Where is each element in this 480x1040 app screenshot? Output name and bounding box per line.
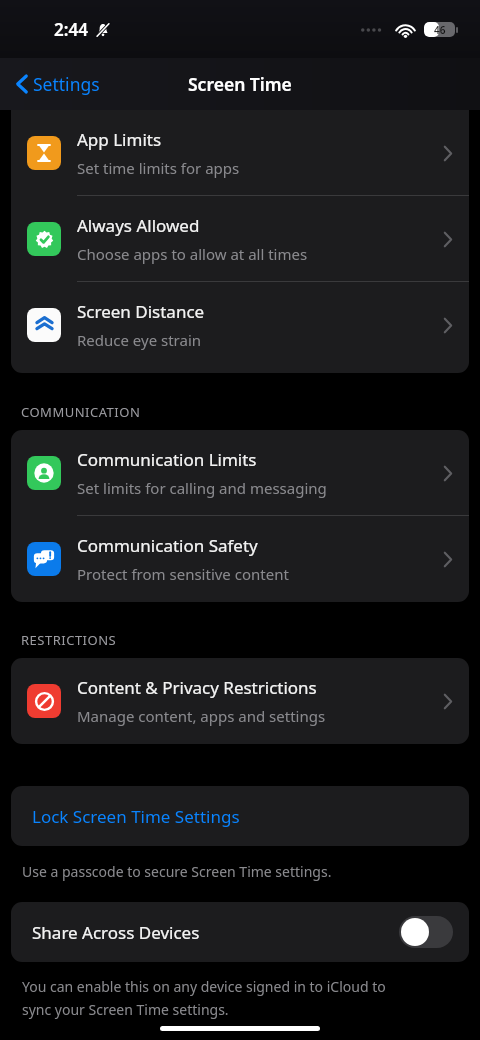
button[interactable]: Lock Screen Time Settings [11, 786, 469, 846]
button[interactable]: Screen Distance [11, 282, 469, 368]
staticText: Screen Time [188, 72, 292, 96]
staticText: Reduce eye strain [77, 330, 202, 350]
staticText: Set time limits for apps [77, 158, 240, 178]
staticText: COMMUNICATION [21, 403, 141, 421]
staticText: App Limits [77, 128, 162, 151]
staticText: Communication Safety [77, 534, 258, 557]
staticText: Always Allowed [77, 214, 200, 237]
staticText: Protect from sensitive content [77, 564, 289, 584]
button[interactable]: Settings [10, 67, 106, 101]
staticText: RESTRICTIONS [21, 631, 117, 649]
button[interactable]: App Limits [11, 110, 469, 196]
staticText: Content & Privacy Restrictions [77, 676, 317, 699]
staticText: Manage content, apps and settings [77, 706, 326, 726]
staticText: Communication Limits [77, 448, 257, 471]
button[interactable]: Communication Limits [11, 430, 469, 516]
staticText: 2:44 [54, 18, 88, 41]
staticText: Screen Distance [77, 300, 205, 323]
staticText: Set limits for calling and messaging [77, 478, 327, 498]
staticText: Share Across Devices [32, 921, 200, 944]
staticText: Use a passcode to secure Screen Time set… [22, 862, 332, 881]
button[interactable]: Share Across Devices toggle [399, 916, 453, 948]
staticText: Lock Screen Time Settings [32, 805, 240, 828]
staticText: Choose apps to allow at all times [77, 244, 308, 264]
staticText: 46 [434, 23, 446, 37]
staticText: Settings [33, 72, 100, 96]
button[interactable]: Share Across Devices [11, 902, 469, 962]
button[interactable]: Always Allowed [11, 196, 469, 282]
button[interactable]: Communication Safety [11, 516, 469, 602]
button[interactable]: Content & Privacy Restrictions [11, 658, 469, 744]
staticText: You can enable this on any device signed… [22, 977, 386, 1019]
